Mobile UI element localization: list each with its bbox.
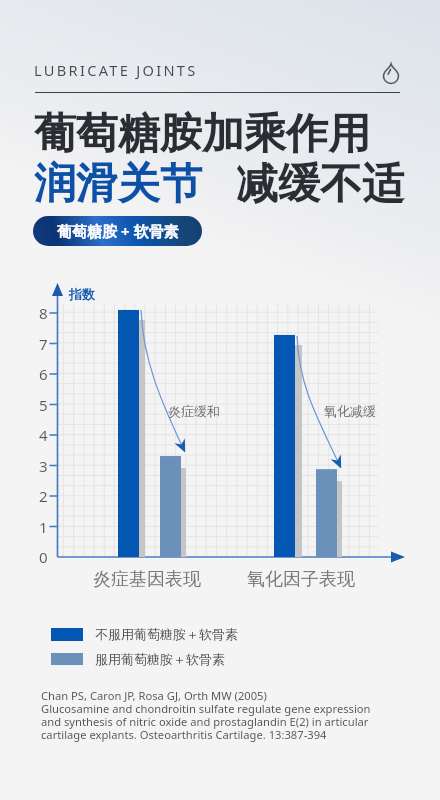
staticText: 炎症基因表现 — [93, 568, 201, 591]
button[interactable]: 葡萄糖胺 + 软骨素 — [33, 216, 202, 246]
staticText: 6 — [39, 364, 48, 384]
staticText: 8 — [39, 303, 48, 323]
staticText: 2 — [39, 486, 48, 506]
staticText: 氧化减缓 — [324, 403, 376, 419]
staticText: Chan PS, Caron JP, Rosa GJ, Orth MW (200… — [41, 688, 371, 742]
staticText: 服用葡萄糖胺＋软骨素 — [95, 651, 225, 667]
staticText: 炎症缓和 — [168, 403, 220, 419]
staticText: 5 — [39, 395, 48, 415]
staticText: 减缓不适 — [236, 158, 404, 211]
staticText: 0 — [39, 547, 48, 567]
staticText: 葡萄糖胺加乘作用 — [34, 108, 370, 161]
staticText: 指数 — [69, 286, 95, 302]
staticText: 葡萄糖胺 + 软骨素 — [57, 221, 179, 241]
staticText: 1 — [39, 517, 48, 537]
button[interactable]: Lubricate drop — [377, 53, 405, 81]
staticText: LUBRICATE JOINTS — [34, 60, 198, 80]
staticText: 氧化因子表现 — [247, 568, 355, 591]
staticText: 润滑关节 — [34, 158, 202, 211]
staticText: 7 — [39, 334, 48, 354]
staticText: 4 — [39, 425, 48, 445]
staticText: 不服用葡萄糖胺＋软骨素 — [95, 626, 238, 642]
staticText: 3 — [39, 456, 48, 476]
